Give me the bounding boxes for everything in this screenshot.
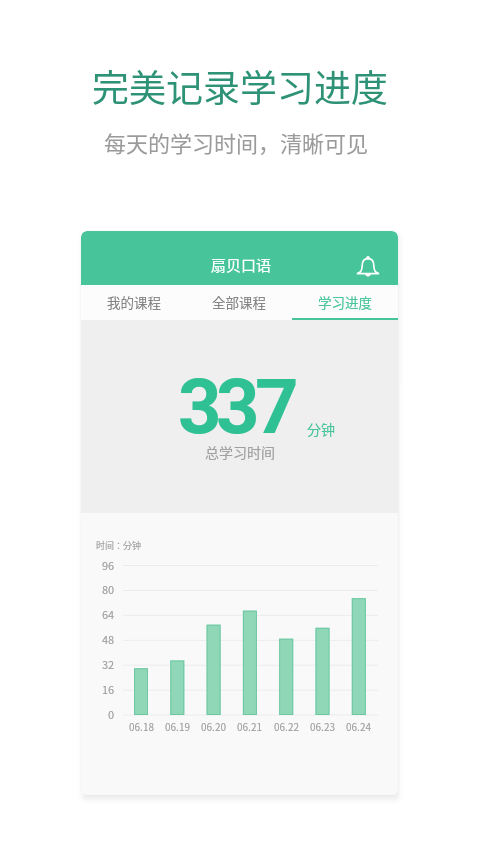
staticText: 06.24 [346, 719, 371, 733]
staticText: 我的课程 [107, 292, 161, 312]
button[interactable]: Notifications [353, 252, 383, 282]
staticText: 3 [216, 362, 260, 451]
staticText: 06.18 [129, 719, 154, 733]
staticText: 06.19 [165, 719, 190, 733]
staticText: 3 [178, 362, 222, 451]
button[interactable]: 我的课程 [81, 285, 186, 320]
staticText: 16 [102, 681, 115, 697]
staticText: 每天的学习时间，清晰可见 [104, 126, 369, 158]
staticText: 32 [102, 656, 115, 672]
staticText: 0 [108, 706, 115, 722]
staticText: 96 [102, 557, 115, 573]
button[interactable]: 学习进度 [292, 285, 398, 320]
staticText: 分钟 [307, 419, 335, 439]
staticText: 学习进度 [318, 292, 372, 312]
staticText: 7 [255, 362, 299, 451]
staticText: 全部课程 [212, 292, 266, 312]
staticText: 06.22 [274, 719, 299, 733]
staticText: 06.23 [310, 719, 335, 733]
staticText: 48 [102, 631, 115, 647]
staticText: 06.20 [201, 719, 226, 733]
staticText: 80 [102, 581, 115, 597]
staticText: 06.21 [237, 719, 262, 733]
staticText: 64 [102, 606, 115, 622]
staticText: 时间：分钟 [96, 539, 142, 552]
staticText: 总学习时间 [205, 442, 275, 462]
staticText: 完美记录学习进度 [92, 59, 388, 113]
staticText: 扇贝口语 [211, 254, 272, 276]
button[interactable]: 全部课程 [186, 285, 292, 320]
